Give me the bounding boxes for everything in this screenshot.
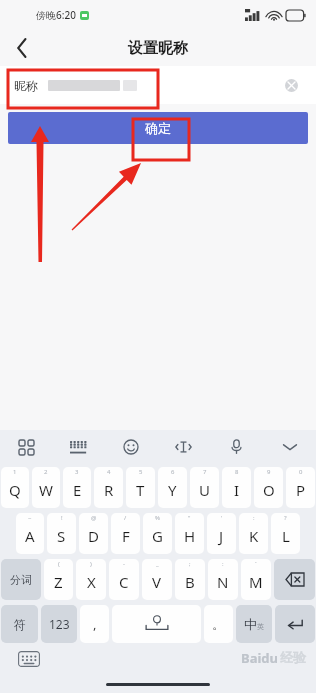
staticText: E xyxy=(73,480,82,500)
button[interactable]: ~ xyxy=(16,513,44,554)
button[interactable]: 6 xyxy=(158,467,187,508)
button[interactable]: 中 xyxy=(236,605,272,643)
button[interactable]: 8 xyxy=(222,467,251,508)
button[interactable]: 0 xyxy=(286,467,315,508)
button[interactable]: Switch keyboard xyxy=(18,651,40,667)
staticText: 傍晚6:20 xyxy=(36,8,76,22)
staticText: X xyxy=(87,572,96,592)
button[interactable]: Emoji xyxy=(104,430,157,464)
button[interactable]: 3 xyxy=(63,467,91,508)
staticText: ; xyxy=(189,560,191,568)
staticText: ! xyxy=(61,514,63,522)
button[interactable]: Keyboard xyxy=(52,430,104,464)
button[interactable]: / xyxy=(111,513,140,554)
staticText: 6 xyxy=(171,468,175,476)
staticText: _ xyxy=(156,560,159,568)
staticText: 中 xyxy=(244,616,257,632)
button[interactable]: 7 xyxy=(190,467,219,508)
staticText: 确定 xyxy=(145,120,171,136)
staticText: 3 xyxy=(75,468,79,476)
button[interactable]: ( xyxy=(44,559,73,600)
staticText: 英 xyxy=(257,622,264,631)
staticText: P xyxy=(296,480,306,500)
button[interactable]: @ xyxy=(79,513,108,554)
staticText: 5 xyxy=(139,468,143,476)
staticText: O xyxy=(263,480,275,500)
button[interactable]: , xyxy=(80,605,109,643)
staticText: 7 xyxy=(203,468,207,476)
staticText: , xyxy=(93,615,97,633)
staticText: 1 xyxy=(13,468,17,476)
staticText: 昵称 xyxy=(14,78,38,93)
button[interactable]: : xyxy=(208,559,238,600)
button[interactable]: ` xyxy=(241,559,271,600)
button[interactable]: " xyxy=(175,513,204,554)
button[interactable]: 9 xyxy=(254,467,283,508)
staticText: 经验 xyxy=(280,649,306,665)
staticText: - xyxy=(123,560,125,568)
staticText: T xyxy=(136,480,145,500)
staticText: V xyxy=(152,572,162,592)
staticText: M xyxy=(249,572,263,592)
staticText: ? xyxy=(284,514,287,522)
staticText: 设置昵称 xyxy=(128,39,188,58)
staticText: ` xyxy=(255,560,257,568)
button[interactable]: 123 xyxy=(41,605,77,643)
staticText: 9 xyxy=(267,468,271,476)
staticText: @ xyxy=(91,514,97,522)
button[interactable]: 5 xyxy=(126,467,155,508)
button[interactable]: ' xyxy=(207,513,236,554)
staticText: : xyxy=(253,514,255,522)
button[interactable]: 4 xyxy=(94,467,123,508)
staticText: ) xyxy=(90,560,92,568)
button[interactable]: 昵称 xyxy=(0,66,316,104)
button[interactable]: % xyxy=(143,513,172,554)
staticText: Baidu xyxy=(241,649,278,667)
staticText: / xyxy=(124,514,127,522)
button[interactable]: Apps xyxy=(0,430,52,464)
button[interactable]: Space xyxy=(112,605,201,643)
button[interactable]: 符 xyxy=(1,605,38,643)
button[interactable]: Clear xyxy=(280,74,302,96)
button[interactable]: 1 xyxy=(1,467,29,508)
button[interactable]: Edit text xyxy=(157,430,210,464)
staticText: " xyxy=(188,514,191,522)
staticText: A xyxy=(25,526,35,546)
staticText: Q xyxy=(9,480,21,500)
staticText: U xyxy=(199,480,210,500)
staticText: 4 xyxy=(107,468,111,476)
staticText: % xyxy=(155,514,160,522)
button[interactable]: - xyxy=(109,559,139,600)
staticText: ' xyxy=(221,514,223,522)
staticText: R xyxy=(104,480,114,500)
staticText: D xyxy=(88,526,99,546)
staticText: 123 xyxy=(49,616,70,632)
button[interactable]: Back xyxy=(0,30,44,66)
staticText: G xyxy=(152,526,163,546)
staticText: : xyxy=(222,560,224,568)
staticText: 符 xyxy=(14,617,26,632)
button[interactable]: 分词 xyxy=(1,559,41,600)
button[interactable]: 确定 xyxy=(8,112,308,144)
button[interactable]: Enter xyxy=(275,605,315,643)
button[interactable]: ! xyxy=(47,513,76,554)
button[interactable]: Hide keyboard xyxy=(263,430,316,464)
button[interactable]: : xyxy=(239,513,268,554)
staticText: ~ xyxy=(28,514,32,522)
button[interactable]: ; xyxy=(175,559,205,600)
button[interactable]: Voice input xyxy=(210,430,263,464)
staticText: C xyxy=(119,572,129,592)
button[interactable]: _ xyxy=(142,559,172,600)
staticText: ( xyxy=(58,560,60,568)
staticText: 0 xyxy=(299,468,303,476)
button[interactable]: Backspace xyxy=(274,559,315,600)
staticText: S xyxy=(57,526,66,546)
button[interactable]: 。 xyxy=(204,605,233,643)
button[interactable]: ) xyxy=(76,559,106,600)
button[interactable]: ? xyxy=(271,513,300,554)
staticText: L xyxy=(282,526,290,546)
button[interactable]: 2 xyxy=(32,467,60,508)
staticText: I xyxy=(234,480,240,500)
staticText: H xyxy=(184,526,196,546)
staticText: B xyxy=(185,572,195,592)
